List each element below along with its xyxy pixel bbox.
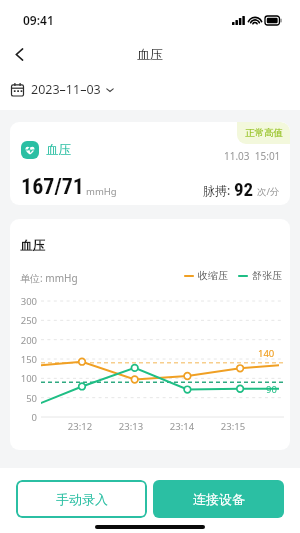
staticText: 150: [10, 353, 37, 366]
staticText: 0: [10, 411, 37, 424]
staticText: 正常高值: [245, 127, 283, 139]
staticText: 23:15: [217, 420, 249, 433]
staticText: 250: [10, 314, 37, 327]
staticText: 2023–11–03: [31, 81, 101, 98]
staticText: 血压: [46, 142, 71, 158]
staticText: 100: [10, 372, 37, 385]
staticText: 脉搏:: [203, 182, 231, 198]
staticText: 23:12: [64, 420, 96, 433]
staticText: 舒张压: [252, 269, 282, 282]
staticText: 23:13: [115, 420, 147, 433]
staticText: 90: [266, 383, 277, 396]
staticText: 单位: mmHg: [20, 271, 78, 285]
staticText: 167/71: [21, 174, 84, 200]
staticText: 50: [10, 392, 37, 405]
staticText: 连接设备: [193, 491, 245, 507]
staticText: 收缩压: [198, 269, 228, 282]
staticText: 23:14: [166, 420, 198, 433]
button[interactable]: 手动录入: [16, 480, 147, 518]
staticText: 09:41: [23, 12, 54, 28]
staticText: 11.03 15:01: [224, 149, 281, 163]
staticText: 300: [10, 295, 37, 308]
button[interactable]: 连接设备: [153, 480, 284, 518]
staticText: 140: [258, 347, 275, 360]
button[interactable]: Back: [3, 40, 35, 68]
staticText: mmHg: [86, 185, 117, 198]
button[interactable]: 2023–11–03: [9, 77, 116, 102]
staticText: 手动录入: [56, 491, 108, 507]
staticText: 次/分: [257, 185, 280, 198]
staticText: 200: [10, 334, 37, 347]
staticText: 92: [234, 178, 254, 200]
staticText: 血压: [20, 238, 45, 254]
staticText: 血压: [137, 46, 163, 62]
